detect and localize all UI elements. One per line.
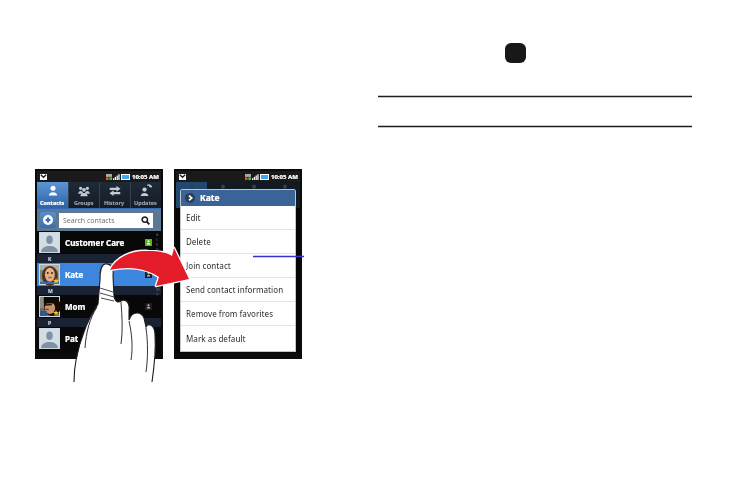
button[interactable]: Kate xyxy=(37,263,161,286)
button[interactable]: Mark as default xyxy=(181,326,295,351)
staticText: C xyxy=(156,237,159,242)
staticText: U xyxy=(156,282,159,287)
button[interactable]: Contacts xyxy=(37,182,68,208)
staticText: W xyxy=(156,287,160,292)
button[interactable]: Button xyxy=(505,43,526,63)
staticText: Y xyxy=(156,292,159,297)
button[interactable]: Add contact xyxy=(40,212,56,228)
staticText: 10:05 AM xyxy=(271,173,298,181)
staticText: M xyxy=(48,288,53,295)
button[interactable]: Updates xyxy=(130,182,161,208)
staticText: Customer Care xyxy=(65,237,125,248)
staticText: S xyxy=(156,277,159,282)
staticText: Contacts xyxy=(40,199,65,206)
staticText: G xyxy=(156,247,159,252)
button[interactable]: Edit xyxy=(181,206,295,230)
button[interactable]: History xyxy=(99,182,130,208)
button[interactable]: Customer Care xyxy=(37,231,161,254)
button[interactable]: Search contacts xyxy=(59,213,153,228)
staticText: Kate xyxy=(65,269,84,280)
staticText: Join contact xyxy=(186,260,231,271)
staticText: 10:05 AM xyxy=(132,173,159,181)
staticText: Edit xyxy=(186,212,201,223)
button[interactable]: Pat xyxy=(37,327,161,350)
staticText: Search contacts xyxy=(63,216,115,226)
staticText: Q xyxy=(156,272,160,277)
button[interactable]: Delete xyxy=(181,230,295,254)
staticText: Mom xyxy=(65,301,86,312)
staticText: Kate xyxy=(200,192,220,204)
staticText: E xyxy=(156,242,159,247)
staticText: Send contact information xyxy=(186,284,284,295)
staticText: Updates xyxy=(134,199,157,206)
staticText: Pat xyxy=(65,333,79,344)
staticText: P xyxy=(48,320,52,327)
staticText: Mark as default xyxy=(186,333,246,344)
staticText: A xyxy=(156,232,159,237)
button[interactable]: Groups xyxy=(68,182,99,208)
button[interactable]: Kate xyxy=(181,190,295,206)
button[interactable]: Join contact xyxy=(181,254,295,278)
button[interactable]: Send contact information xyxy=(181,278,295,302)
staticText: K xyxy=(48,256,52,263)
staticText: Remove from favorites xyxy=(186,308,274,319)
staticText: History xyxy=(104,199,125,206)
staticText: Groups xyxy=(74,199,94,206)
staticText: Delete xyxy=(186,236,211,247)
button[interactable]: Mom xyxy=(37,295,161,318)
button[interactable]: Remove from favorites xyxy=(181,302,295,326)
